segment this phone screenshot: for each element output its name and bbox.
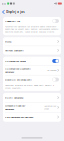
- staticText: Dotknutí pro probuzení: [5, 78, 32, 81]
- staticText: Velikost zobrazení: [5, 49, 24, 52]
- staticText: Písmo: [5, 40, 11, 43]
- button[interactable]: Zpět: [0, 7, 6, 16]
- staticText: 9:41: [2, 2, 6, 5]
- staticText: Automaticky upravuje jas displeje podle …: [5, 25, 58, 33]
- staticText: Displej a jas: [6, 10, 24, 14]
- staticText: Celá obrazovka pro aplikace: [5, 115, 33, 119]
- staticText: Automatický výběr: [44, 105, 56, 110]
- staticText: Adaptivní jas: [5, 19, 20, 23]
- staticText: Automaticky otáčet: [5, 59, 26, 63]
- staticText: 30 sekund: [47, 69, 56, 72]
- staticText: Automatické uzamčení obrazovky: [5, 67, 31, 73]
- staticText: Omezené hodnoty obrazovky: [5, 104, 25, 110]
- button[interactable]: Písmo: [3, 37, 61, 46]
- button[interactable]: Ruční obrazovka: [3, 93, 61, 102]
- button[interactable]: Adaptivní jas: [3, 17, 61, 25]
- staticText: Uzamčení displeje po kratší době šetří b…: [5, 84, 54, 89]
- button[interactable]: Dotknutí pro probuzení: [3, 75, 61, 84]
- staticText: Ruční obrazovka: [5, 96, 23, 99]
- button[interactable]: Automaticky otáčet: [3, 57, 61, 65]
- button[interactable]: Omezené hodnoty obrazovky: [3, 103, 61, 112]
- button[interactable]: Automatické uzamčení obrazovky: [3, 66, 61, 75]
- button[interactable]: Velikost zobrazení: [3, 46, 61, 55]
- button[interactable]: Celá obrazovka pro aplikace: [3, 112, 61, 122]
